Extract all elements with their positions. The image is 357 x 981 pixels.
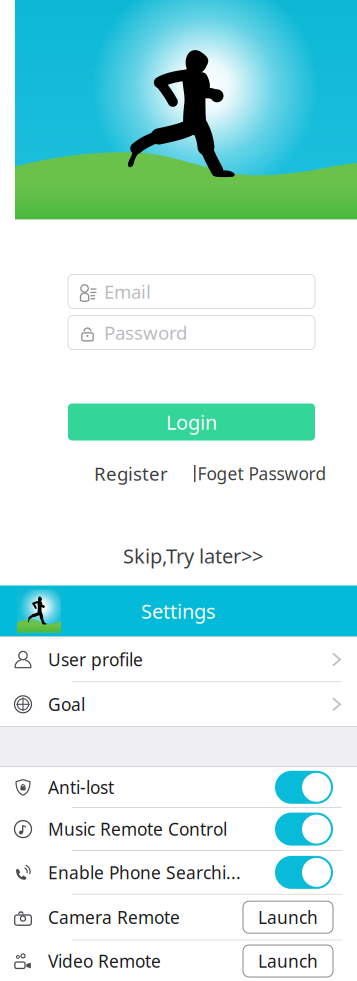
button[interactable]: Enable Phone Searching [275, 856, 333, 889]
button[interactable]: Skip,Try later>> [123, 542, 263, 569]
staticText: Enable Phone Searchi... [48, 861, 241, 884]
button[interactable]: Register [94, 461, 168, 486]
button[interactable]: Foget Password [197, 462, 326, 485]
staticText: Camera Remote [48, 906, 180, 929]
staticText: Skip,Try later>> [123, 542, 263, 569]
staticText: Password [104, 320, 187, 345]
staticText: Login [166, 409, 217, 435]
button[interactable]: User profile [0, 637, 357, 681]
staticText: Settings [141, 598, 216, 624]
staticText: Music Remote Control [48, 818, 227, 841]
staticText: User profile [48, 648, 143, 671]
staticText: Goal [48, 693, 85, 716]
button[interactable]: Goal [0, 682, 357, 726]
staticText: Launch [258, 906, 318, 929]
button[interactable]: Anti-lost [275, 771, 333, 804]
staticText: Email [104, 279, 151, 304]
button[interactable]: Launch [243, 945, 333, 977]
button[interactable]: Login [68, 403, 315, 440]
staticText: Foget Password [197, 462, 326, 485]
staticText: Video Remote [48, 949, 161, 972]
button[interactable]: Launch [243, 901, 333, 933]
staticText: Register [94, 461, 168, 486]
staticText: Launch [258, 949, 318, 972]
staticText: Anti-lost [48, 776, 114, 799]
button[interactable]: Music Remote Control [275, 813, 333, 846]
